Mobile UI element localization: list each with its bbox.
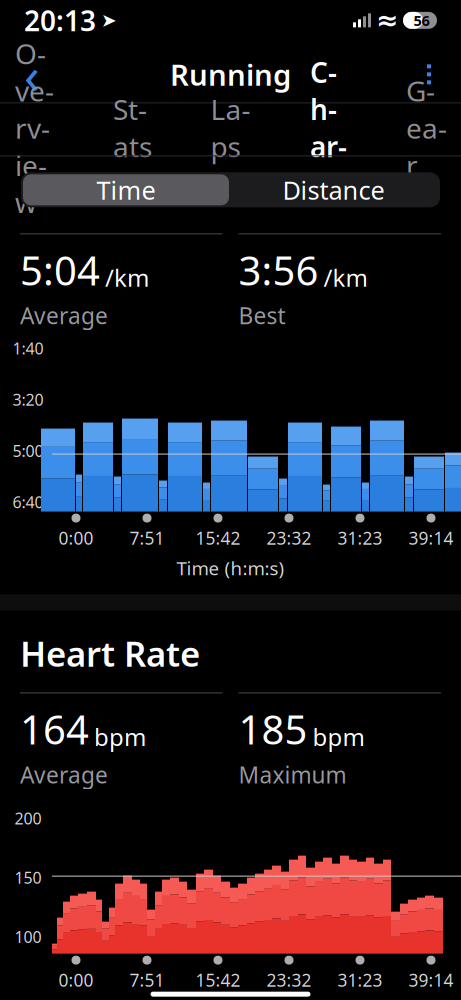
staticText: 7:51 [129,969,164,992]
staticText: 6:40 [12,491,43,512]
staticText: /km [323,262,367,293]
staticText: 31:23 [337,527,382,550]
staticText: 150 [14,867,41,888]
staticText: 20:13 [24,2,96,39]
staticText: 7:51 [129,527,164,550]
staticText: 5:00 [12,440,43,461]
staticText: 23:32 [266,969,311,992]
staticText: Time [96,173,155,207]
staticText: 15:42 [195,969,240,992]
staticText: Laps [210,91,250,165]
staticText: Charts [310,53,347,202]
staticText: bpm [312,721,364,753]
button[interactable]: Time [23,174,229,205]
staticText: Running [170,55,291,94]
staticText: Average [20,300,108,331]
staticText: Average [20,759,108,790]
staticText: /km [105,262,149,293]
staticText: 3:56 [238,243,318,296]
staticText: 56 [413,11,429,30]
staticText: bpm [94,721,146,753]
staticText: 1:40 [12,338,43,359]
button[interactable]: Distance [229,174,438,205]
staticText: 31:23 [337,969,382,992]
staticText: 100 [14,926,41,947]
staticText: Time (h:m:s) [176,556,284,580]
staticText: 185 [238,702,307,755]
button[interactable]: Overview [10,104,59,154]
button[interactable]: Gear [402,104,451,154]
staticText: 0:00 [58,969,93,992]
staticText: ≈ [376,5,398,35]
button[interactable]: Stats [108,104,157,154]
staticText: Best [238,300,285,331]
staticText: 23:32 [266,527,311,550]
staticText: 5:04 [20,243,100,296]
staticText: 15:42 [195,527,240,550]
button[interactable]: Back [8,50,56,98]
staticText: ‹ [24,41,40,108]
staticText: Heart Rate [20,630,200,676]
staticText: ➤ [101,10,117,31]
staticText: 39:14 [408,527,453,550]
staticText: 39:14 [408,969,453,992]
staticText: 164 [20,702,89,755]
staticText: Overview [15,35,54,221]
staticText: Gear [406,72,447,184]
staticText: Distance [282,173,384,207]
button[interactable]: Charts [304,104,353,154]
staticText: Maximum [238,759,346,790]
button[interactable]: More options [405,50,453,98]
staticText: 200 [14,808,41,829]
staticText: 3:20 [12,389,43,410]
button[interactable]: Laps [206,104,255,154]
staticText: Stats [113,91,152,165]
staticText: 0:00 [58,527,93,550]
